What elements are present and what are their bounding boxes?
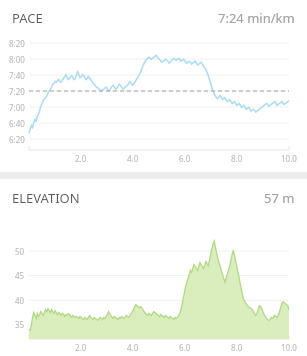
button[interactable] — [0, 179, 307, 356]
button[interactable] — [0, 0, 307, 172]
